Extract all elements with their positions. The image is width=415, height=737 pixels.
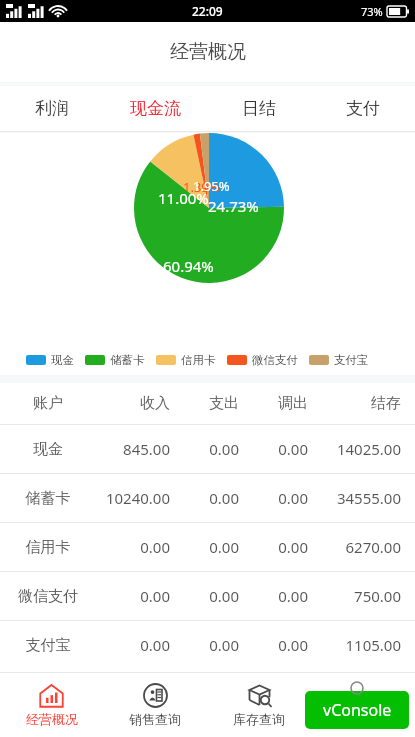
staticText: 经营概况 [170, 40, 246, 64]
button[interactable]: 储蓄卡 [0, 474, 415, 522]
staticText: 845.00 [84, 439, 170, 459]
staticText: 储蓄卡 [110, 353, 145, 367]
staticText: 0.00 [170, 537, 239, 557]
staticText: 经营概况 [26, 711, 78, 727]
staticText: vConsole [323, 699, 392, 721]
button[interactable]: 经营概况 [0, 673, 103, 737]
staticText: 0.00 [239, 586, 308, 606]
staticText: 0.00 [239, 439, 308, 459]
staticText: 日结 [242, 98, 276, 119]
staticText: 0.00 [239, 488, 308, 508]
staticText: 信用卡 [181, 353, 216, 367]
staticText: 1.39% [183, 178, 220, 196]
button[interactable]: 支付 [311, 86, 415, 131]
staticText: 现金 [12, 440, 84, 459]
staticText: 11.00% [158, 188, 209, 208]
staticText: 0.00 [239, 635, 308, 655]
staticText: 0.00 [170, 635, 239, 655]
staticText: 支付宝 [12, 636, 84, 655]
staticText: 账户 [12, 394, 84, 413]
button[interactable]: 现金 [0, 425, 415, 473]
button[interactable]: 现金流 [103, 86, 207, 131]
staticText: 库存查询 [233, 711, 285, 727]
staticText: 支付 [346, 98, 380, 119]
staticText: 10240.00 [84, 488, 170, 508]
staticText: 收入 [84, 394, 170, 413]
button[interactable]: 微信支付 [0, 572, 415, 620]
staticText: 储蓄卡 [12, 489, 84, 508]
button[interactable]: 日结 [207, 86, 311, 131]
staticText: 信用卡 [12, 538, 84, 557]
staticText: 6270.00 [308, 537, 401, 557]
staticText: 微信支付 [12, 587, 84, 606]
button[interactable]: 销售查询 [103, 673, 207, 737]
button[interactable]: 利润 [0, 86, 103, 131]
staticText: 0.00 [84, 586, 170, 606]
staticText: 34555.00 [308, 488, 401, 508]
staticText: 微信支付 [252, 353, 298, 367]
staticText: 0.00 [84, 635, 170, 655]
button[interactable]: 信用卡 [0, 523, 415, 571]
staticText: 0.00 [84, 537, 170, 557]
staticText: 14025.00 [308, 439, 401, 459]
staticText: 销售查询 [129, 711, 181, 727]
staticText: 现金 [51, 353, 74, 367]
staticText: 24.73% [208, 196, 259, 216]
staticText: 调出 [239, 394, 308, 413]
staticText: 支付宝 [334, 353, 369, 367]
button[interactable]: 支付宝 [0, 621, 415, 669]
staticText: 现金流 [130, 98, 181, 119]
staticText: 1105.00 [308, 635, 401, 655]
button[interactable]: vConsole [305, 691, 409, 729]
staticText: 0.00 [239, 537, 308, 557]
staticText: 22:09 [192, 3, 223, 19]
staticText: 60.94% [163, 256, 214, 276]
staticText: 750.00 [308, 586, 401, 606]
staticText: 0.00 [170, 586, 239, 606]
staticText: 0.00 [170, 439, 239, 459]
button[interactable]: 库存查询 [207, 673, 311, 737]
staticText: 利润 [35, 98, 69, 119]
staticText: 结存 [308, 394, 401, 413]
staticText: 1.95% [193, 177, 230, 195]
staticText: 支出 [170, 394, 239, 413]
staticText: 0.00 [170, 488, 239, 508]
staticText: 73% [361, 4, 383, 19]
